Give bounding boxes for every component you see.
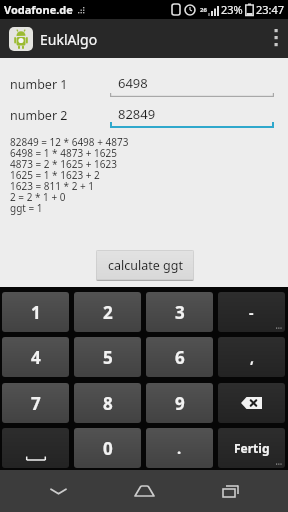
- staticText: 7: [31, 392, 41, 415]
- button[interactable]: [264, 19, 288, 58]
- staticText: 26: [200, 6, 207, 14]
- button[interactable]: 2: [74, 292, 141, 332]
- button[interactable]: 5: [74, 337, 141, 377]
- button[interactable]: Fertig: [218, 428, 285, 468]
- staticText: number 1: [10, 76, 68, 93]
- button[interactable]: 7: [2, 383, 69, 423]
- staticText: 8: [103, 392, 113, 415]
- staticText: 1: [31, 301, 41, 324]
- button[interactable]: ,: [218, 337, 285, 377]
- button[interactable]: 0: [74, 428, 141, 468]
- staticText: 6: [175, 346, 185, 369]
- staticText: Vodafone.de: [4, 2, 73, 17]
- button[interactable]: 82849: [110, 101, 274, 128]
- staticText: 4: [31, 346, 41, 369]
- button[interactable]: 8: [74, 383, 141, 423]
- staticText: Fertig: [234, 440, 270, 456]
- staticText: EuklAlgo: [40, 30, 98, 49]
- staticText: 82849 = 12 * 6498 + 4873 6498 = 1 * 4873…: [10, 135, 129, 215]
- button[interactable]: -: [218, 292, 285, 332]
- button[interactable]: [2, 428, 69, 468]
- button[interactable]: [202, 470, 258, 512]
- staticText: 82849: [118, 105, 156, 123]
- button[interactable]: 1: [2, 292, 69, 332]
- staticText: 23%: [221, 2, 243, 17]
- staticText: -: [249, 303, 254, 322]
- staticText: 0: [103, 437, 113, 460]
- button[interactable]: calculate ggt: [96, 250, 194, 281]
- staticText: ,: [250, 348, 254, 367]
- staticText: 2: [103, 301, 113, 324]
- staticText: 3: [175, 301, 185, 324]
- button[interactable]: 6498: [110, 70, 274, 97]
- staticText: number 2: [10, 107, 68, 124]
- staticText: 5: [103, 346, 113, 369]
- staticText: 9: [175, 392, 185, 415]
- staticText: calculate ggt: [108, 257, 183, 274]
- button[interactable]: 9: [146, 383, 213, 423]
- staticText: 6498: [118, 74, 148, 92]
- button[interactable]: [116, 470, 172, 512]
- button[interactable]: [30, 470, 86, 512]
- button[interactable]: [218, 383, 285, 423]
- staticText: 23:47: [256, 2, 285, 17]
- button[interactable]: 6: [146, 337, 213, 377]
- button[interactable]: 4: [2, 337, 69, 377]
- staticText: .: [177, 438, 182, 458]
- button[interactable]: 3: [146, 292, 213, 332]
- button[interactable]: .: [146, 428, 213, 468]
